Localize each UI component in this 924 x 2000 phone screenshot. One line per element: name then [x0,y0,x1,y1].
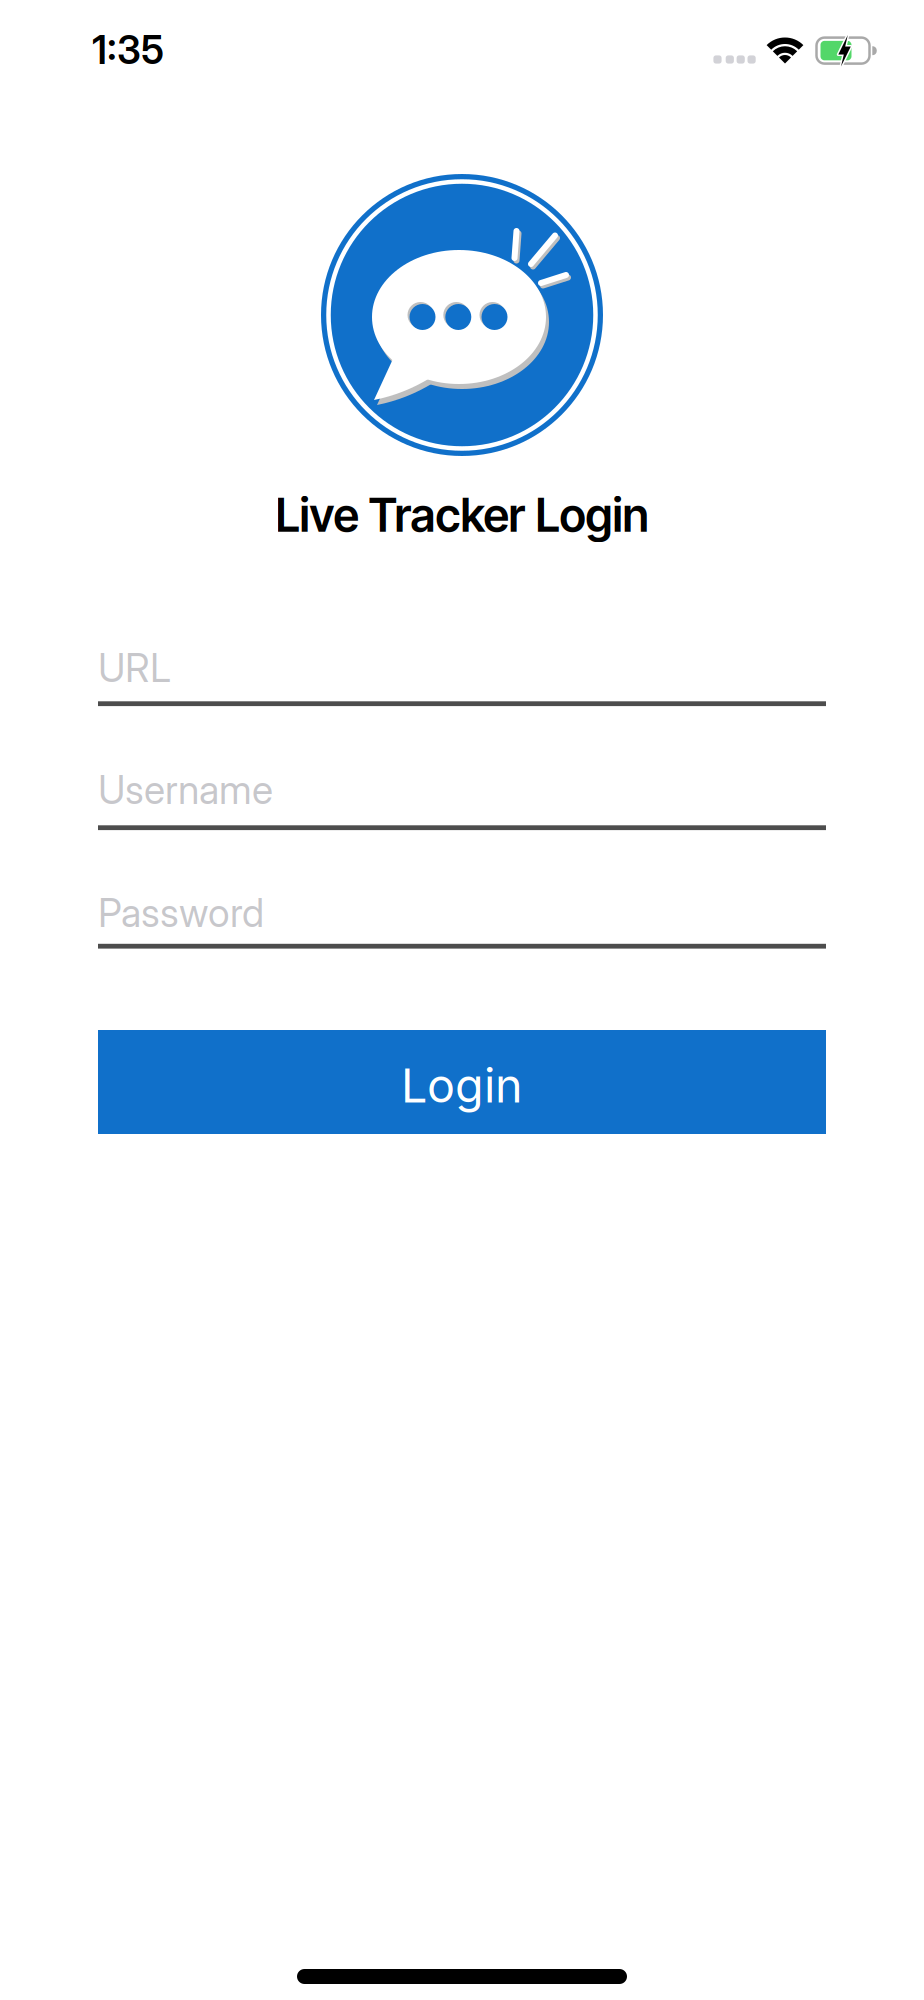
staticText: URL [98,645,171,691]
staticText: Live Tracker Login [275,487,648,543]
button[interactable]: URL [98,646,826,706]
button[interactable]: Password [98,889,826,949]
staticText: Username [98,767,273,813]
staticText: Login [401,1058,523,1113]
staticText: 1:35 [92,27,164,73]
staticText: Password [98,890,264,936]
button[interactable]: Username [98,770,826,830]
button[interactable]: Login [98,1030,826,1134]
